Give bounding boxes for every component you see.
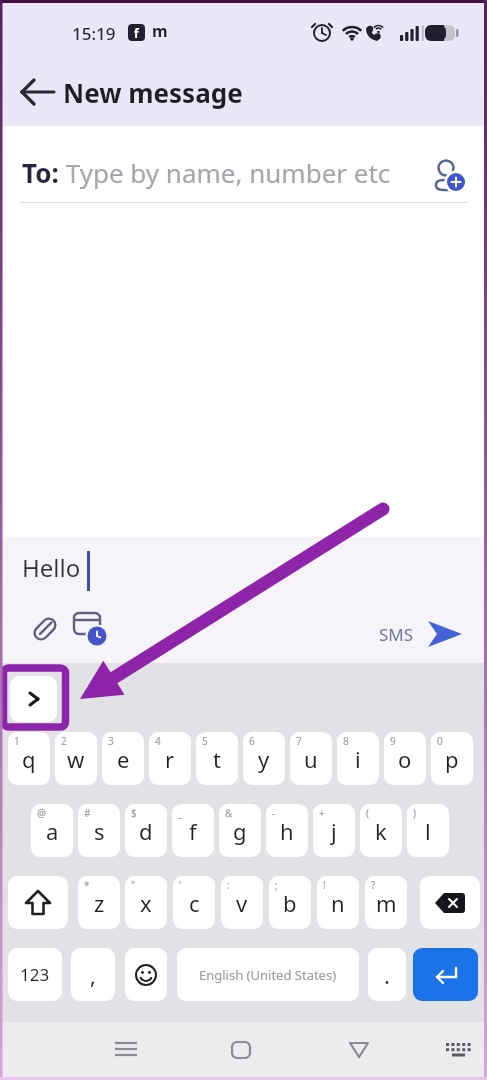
button[interactable]: 5: [196, 732, 238, 785]
button[interactable]: 3: [102, 732, 144, 785]
button[interactable]: [125, 948, 167, 1001]
button[interactable]: [413, 948, 478, 1001]
staticText: a: [46, 816, 59, 846]
staticText: Type by name, number etc: [59, 155, 433, 190]
button[interactable]: SMS: [372, 612, 472, 656]
staticText: #: [84, 806, 91, 820]
button[interactable]: @: [31, 804, 73, 857]
staticText: n: [331, 888, 345, 918]
staticText: !: [323, 878, 326, 892]
button[interactable]: 4: [149, 732, 191, 785]
button[interactable]: .: [368, 948, 406, 1001]
button[interactable]: [105, 1030, 147, 1070]
button[interactable]: [420, 876, 480, 929]
staticText: ;: [275, 878, 278, 892]
button[interactable]: #: [78, 804, 120, 857]
staticText: g: [233, 816, 247, 846]
staticText: i: [355, 744, 361, 774]
staticText: d: [139, 816, 153, 846]
staticText: ): [413, 806, 416, 820]
staticText: h: [280, 816, 294, 846]
button[interactable]: [8, 876, 68, 929]
button[interactable]: ?: [365, 876, 407, 929]
staticText: z: [94, 888, 105, 918]
staticText: *: [84, 878, 90, 892]
staticText: To:: [22, 155, 59, 190]
staticText: .: [384, 960, 390, 990]
staticText: o: [398, 744, 412, 774]
button[interactable]: _: [172, 804, 214, 857]
staticText: ,: [90, 960, 96, 990]
button[interactable]: ,: [71, 948, 115, 1001]
button[interactable]: 9: [384, 732, 426, 785]
staticText: 3: [108, 734, 114, 748]
button[interactable]: 8: [337, 732, 379, 785]
staticText: f: [134, 25, 139, 41]
staticText: (: [366, 806, 369, 820]
button[interactable]: ): [407, 804, 449, 857]
staticText: x: [140, 888, 152, 918]
button[interactable]: $: [125, 804, 167, 857]
staticText: s: [94, 816, 105, 846]
staticText: q: [22, 744, 36, 774]
staticText: @: [37, 806, 46, 820]
button[interactable]: ': [173, 876, 215, 929]
button[interactable]: 2: [55, 732, 97, 785]
staticText: t: [213, 744, 221, 774]
button[interactable]: 123: [8, 948, 62, 1001]
button[interactable]: *: [78, 876, 120, 929]
staticText: _: [178, 806, 183, 820]
button[interactable]: +: [313, 804, 355, 857]
button[interactable]: 6: [243, 732, 285, 785]
button[interactable]: 7: [290, 732, 332, 785]
button[interactable]: To:: [0, 126, 487, 203]
staticText: y: [258, 744, 270, 774]
staticText: 6: [249, 734, 255, 748]
staticText: SMS: [379, 623, 414, 646]
button[interactable]: [433, 153, 473, 193]
staticText: English (United States): [199, 966, 337, 984]
staticText: m: [152, 20, 168, 42]
button[interactable]: :: [221, 876, 263, 929]
button[interactable]: [10, 676, 57, 722]
staticText: w: [67, 744, 85, 774]
button[interactable]: English (United States): [177, 948, 359, 1001]
button[interactable]: ": [125, 876, 167, 929]
staticText: ?: [371, 878, 376, 892]
staticText: &: [225, 806, 233, 820]
button[interactable]: &: [219, 804, 261, 857]
button[interactable]: !: [317, 876, 359, 929]
staticText: r: [165, 744, 175, 774]
button[interactable]: -: [266, 804, 308, 857]
staticText: 8: [343, 734, 349, 748]
button[interactable]: ;: [269, 876, 311, 929]
staticText: l: [425, 816, 431, 846]
staticText: ": [131, 878, 136, 892]
staticText: u: [304, 744, 318, 774]
staticText: 9: [390, 734, 396, 748]
staticText: -: [272, 806, 276, 820]
staticText: ': [179, 878, 182, 892]
button[interactable]: (: [360, 804, 402, 857]
button[interactable]: 0: [431, 732, 473, 785]
button[interactable]: [438, 1030, 480, 1070]
button[interactable]: [18, 74, 58, 110]
button[interactable]: [72, 608, 110, 646]
staticText: k: [375, 816, 387, 846]
button[interactable]: [338, 1030, 380, 1070]
staticText: b: [283, 888, 297, 918]
staticText: 2: [61, 734, 67, 748]
staticText: 123: [20, 963, 50, 986]
staticText: 4: [155, 734, 161, 748]
staticText: :: [227, 878, 230, 892]
button[interactable]: [220, 1030, 262, 1070]
button[interactable]: [28, 612, 62, 646]
staticText: j: [331, 816, 337, 846]
button[interactable]: 1: [8, 732, 50, 785]
staticText: v: [236, 888, 248, 918]
staticText: $: [131, 806, 137, 820]
staticText: 1: [14, 734, 20, 748]
staticText: 7: [296, 734, 302, 748]
staticText: New message: [63, 75, 243, 110]
staticText: c: [189, 888, 200, 918]
